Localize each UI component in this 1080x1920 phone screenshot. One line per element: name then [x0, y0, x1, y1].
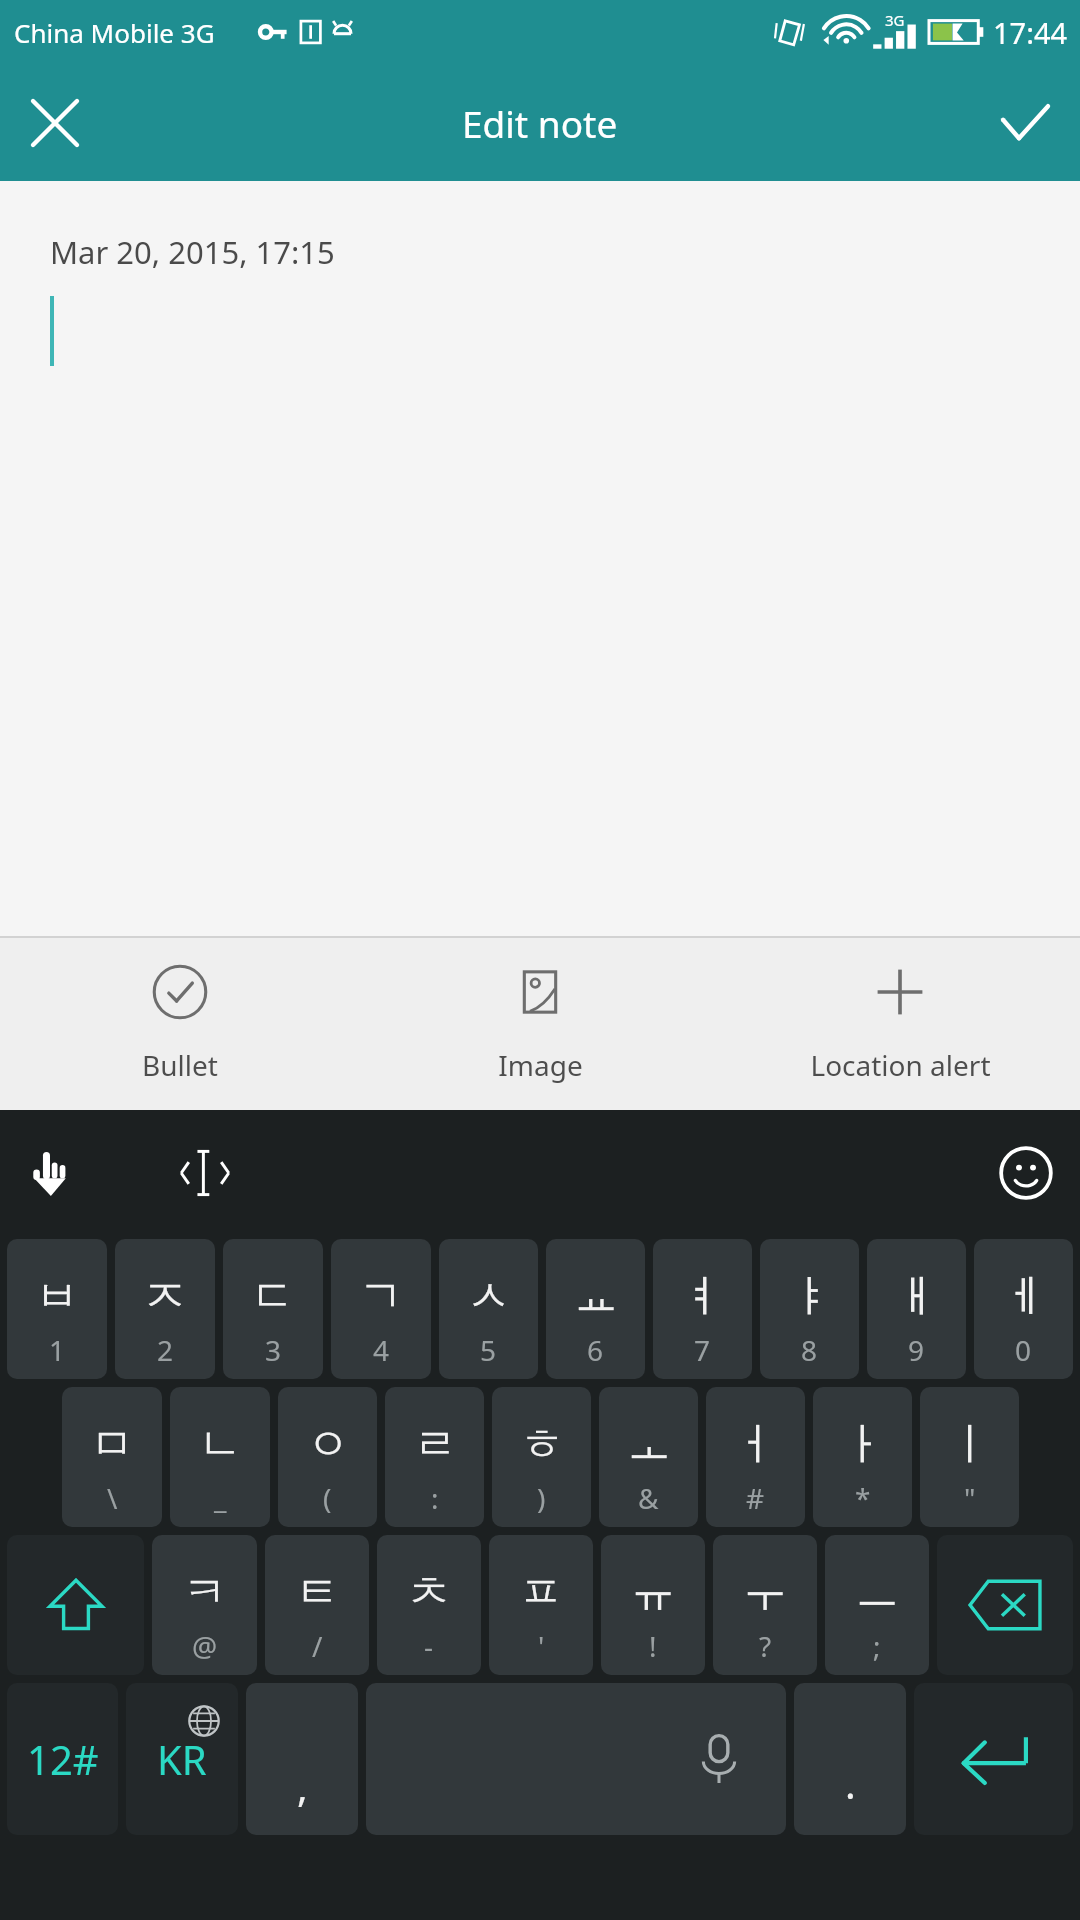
- staticText: 3: [265, 1331, 282, 1369]
- button[interactable]: Bullet: [0, 938, 360, 1110]
- staticText: ㅗ: [627, 1417, 671, 1472]
- button[interactable]: ㄹ: [385, 1387, 484, 1527]
- button[interactable]: ㅛ: [546, 1239, 645, 1379]
- button[interactable]: ㅋ: [152, 1535, 257, 1675]
- staticText: 0: [1015, 1331, 1032, 1369]
- staticText: _: [214, 1479, 227, 1517]
- button[interactable]: ㅏ: [813, 1387, 912, 1527]
- button[interactable]: Cursor control: [160, 1128, 250, 1218]
- staticText: ,: [297, 1759, 308, 1813]
- staticText: 5: [480, 1331, 497, 1369]
- button[interactable]: Save: [970, 68, 1080, 178]
- staticText: 3G: [885, 10, 905, 30]
- staticText: ㅈ: [143, 1269, 187, 1324]
- staticText: ?: [759, 1627, 772, 1665]
- button[interactable]: ㅇ: [278, 1387, 377, 1527]
- button[interactable]: ㅌ: [265, 1535, 369, 1675]
- button[interactable]: ㅣ: [920, 1387, 1019, 1527]
- button[interactable]: .: [794, 1683, 906, 1835]
- staticText: ㄷ: [251, 1269, 295, 1324]
- button[interactable]: ㅡ: [825, 1535, 929, 1675]
- button[interactable]: ㅔ: [974, 1239, 1073, 1379]
- staticText: China Mobile 3G: [14, 15, 215, 50]
- button[interactable]: ㅕ: [653, 1239, 752, 1379]
- staticText: ㅋ: [183, 1565, 227, 1620]
- staticText: ㅜ: [743, 1565, 787, 1620]
- staticText: 9: [908, 1331, 925, 1369]
- button[interactable]: Handwriting: [10, 1133, 90, 1213]
- staticText: (: [323, 1479, 332, 1517]
- staticText: ': [538, 1627, 545, 1665]
- staticText: ": [964, 1479, 976, 1517]
- button[interactable]: ㅁ: [62, 1387, 162, 1527]
- staticText: ;: [873, 1627, 881, 1665]
- staticText: \: [107, 1479, 118, 1517]
- button[interactable]: Space: [366, 1683, 786, 1835]
- button[interactable]: ㅜ: [713, 1535, 817, 1675]
- staticText: ): [537, 1479, 546, 1517]
- button[interactable]: ㅐ: [867, 1239, 966, 1379]
- button[interactable]: ㄴ: [170, 1387, 270, 1527]
- button[interactable]: Emoji: [986, 1133, 1066, 1213]
- staticText: &: [638, 1479, 659, 1517]
- button[interactable]: Enter: [914, 1683, 1073, 1835]
- staticText: 2: [157, 1331, 174, 1369]
- staticText: ㅂ: [35, 1269, 79, 1324]
- button[interactable]: ㄷ: [223, 1239, 323, 1379]
- staticText: ㅅ: [467, 1269, 511, 1324]
- button[interactable]: ,: [246, 1683, 358, 1835]
- staticText: ㅁ: [90, 1417, 134, 1472]
- button[interactable]: ㅅ: [439, 1239, 538, 1379]
- staticText: ㅌ: [295, 1565, 339, 1620]
- staticText: Location alert: [810, 1046, 991, 1084]
- staticText: ㅎ: [520, 1417, 564, 1472]
- button[interactable]: ㅠ: [601, 1535, 705, 1675]
- staticText: Edit note: [462, 98, 618, 148]
- staticText: Mar 20, 2015, 17:15: [50, 231, 335, 273]
- button[interactable]: ㅓ: [706, 1387, 805, 1527]
- button[interactable]: KR: [126, 1683, 238, 1835]
- staticText: 12#: [27, 1732, 99, 1786]
- button[interactable]: Backspace: [937, 1535, 1073, 1675]
- button[interactable]: ㄱ: [331, 1239, 431, 1379]
- button[interactable]: Image: [360, 938, 720, 1110]
- button[interactable]: ㅍ: [489, 1535, 593, 1675]
- staticText: .: [845, 1756, 856, 1810]
- staticText: :: [431, 1479, 439, 1517]
- staticText: KR: [157, 1732, 207, 1786]
- staticText: 4: [373, 1331, 390, 1369]
- button[interactable]: ㅊ: [377, 1535, 481, 1675]
- staticText: ㅛ: [574, 1269, 618, 1324]
- staticText: ㅕ: [681, 1269, 725, 1324]
- staticText: ㅓ: [734, 1417, 778, 1472]
- staticText: -: [424, 1627, 434, 1665]
- staticText: 1: [49, 1331, 66, 1369]
- staticText: 17:44: [993, 13, 1068, 52]
- staticText: !: [649, 1627, 657, 1665]
- staticText: 8: [801, 1331, 818, 1369]
- button[interactable]: ㅂ: [7, 1239, 107, 1379]
- staticText: ㅐ: [895, 1269, 939, 1324]
- staticText: ㄴ: [198, 1417, 242, 1472]
- button[interactable]: 12#: [7, 1683, 118, 1835]
- staticText: 6: [587, 1331, 604, 1369]
- staticText: ㅏ: [841, 1417, 885, 1472]
- staticText: Image: [498, 1046, 583, 1084]
- button[interactable]: ㅑ: [760, 1239, 859, 1379]
- staticText: #: [746, 1479, 765, 1517]
- staticText: ㄱ: [359, 1269, 403, 1324]
- staticText: Bullet: [142, 1046, 218, 1084]
- staticText: ㅍ: [519, 1565, 563, 1620]
- staticText: ㅇ: [306, 1417, 350, 1472]
- staticText: ㅡ: [855, 1565, 899, 1620]
- button[interactable]: Location alert: [720, 938, 1080, 1110]
- button[interactable]: Shift: [7, 1535, 144, 1675]
- staticText: ㅑ: [788, 1269, 832, 1324]
- staticText: 7: [694, 1331, 711, 1369]
- button[interactable]: ㅗ: [599, 1387, 698, 1527]
- staticText: ㄹ: [413, 1417, 457, 1472]
- staticText: @: [192, 1627, 218, 1665]
- button[interactable]: ㅈ: [115, 1239, 215, 1379]
- button[interactable]: Close: [0, 68, 110, 178]
- button[interactable]: ㅎ: [492, 1387, 591, 1527]
